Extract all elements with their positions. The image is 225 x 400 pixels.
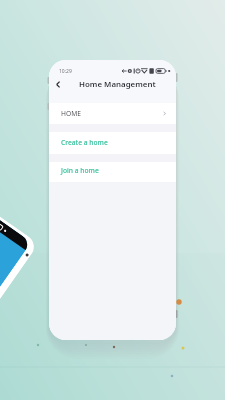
button[interactable]: Create a home — [49, 132, 176, 154]
staticText: 10:29 — [59, 68, 72, 75]
staticText: Home Management — [79, 79, 156, 90]
staticText: Join a home — [61, 166, 99, 175]
button[interactable]: Join a home — [49, 162, 176, 182]
button[interactable]: HOME — [49, 103, 176, 124]
staticText: HOME — [61, 109, 81, 118]
staticText: Create a home — [61, 138, 108, 147]
button[interactable]: Back — [49, 75, 68, 94]
